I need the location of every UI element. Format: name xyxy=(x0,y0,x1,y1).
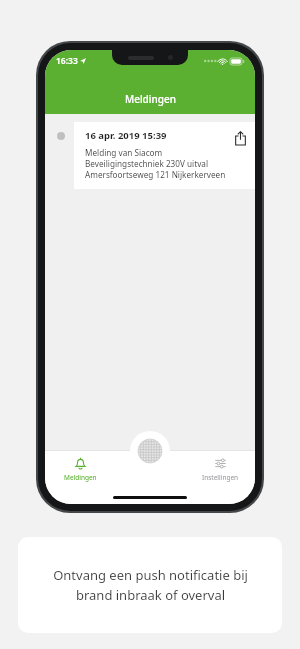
staticText: 16:33 xyxy=(56,55,78,67)
staticText: Melding van Siacom Beveiligingstechniek … xyxy=(85,147,226,180)
staticText: Instellingen xyxy=(202,473,239,482)
button[interactable]: Share xyxy=(231,129,249,147)
button[interactable]: Instellingen xyxy=(185,457,255,482)
staticText: 16 apr. 2019 15:39 xyxy=(85,129,167,142)
staticText: Meldingen xyxy=(64,473,97,482)
button[interactable]: Meldingen xyxy=(45,457,115,482)
staticText: Ontvang een push notificatie bij brand i… xyxy=(53,566,248,604)
button[interactable]: 16 apr. 2019 15:39 xyxy=(45,122,255,189)
staticText: Meldingen xyxy=(125,92,176,106)
button[interactable]: Microfoon xyxy=(130,431,170,471)
